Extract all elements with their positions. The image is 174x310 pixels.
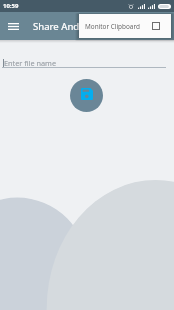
button[interactable]: Save file [70, 79, 103, 112]
button[interactable]: Enter file name [2, 56, 166, 70]
staticText: Monitor Clipboard [85, 22, 140, 31]
staticText: Enter file name [4, 58, 57, 68]
staticText: Share Android [33, 20, 98, 33]
staticText: 10:59 [3, 2, 19, 10]
button[interactable]: Monitor Clipboard [79, 14, 171, 38]
button[interactable]: Open navigation menu [0, 13, 26, 39]
